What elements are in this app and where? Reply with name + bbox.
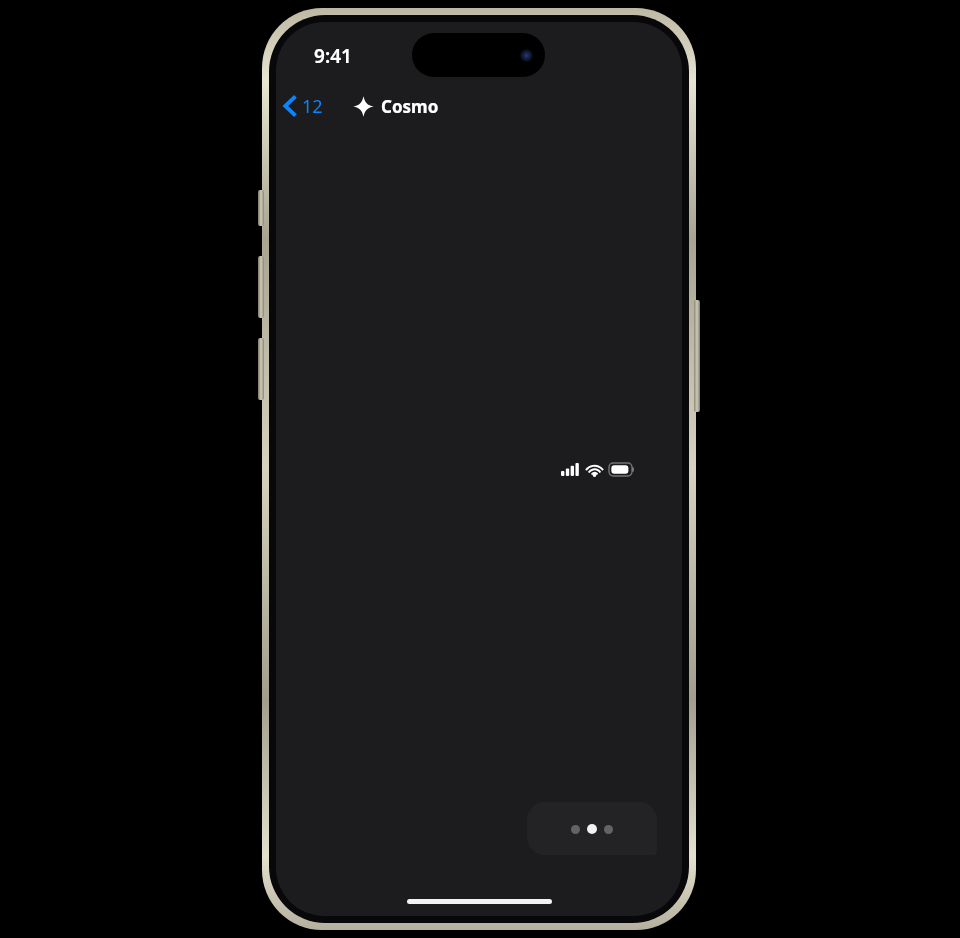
staticText: 12: [302, 94, 323, 119]
button[interactable]: Cosmo: [351, 86, 441, 126]
staticText: 9:41: [314, 43, 352, 69]
button[interactable]: Assistant is typing: [527, 802, 657, 855]
staticText: Cosmo: [381, 95, 439, 118]
button[interactable]: 12: [276, 86, 329, 126]
